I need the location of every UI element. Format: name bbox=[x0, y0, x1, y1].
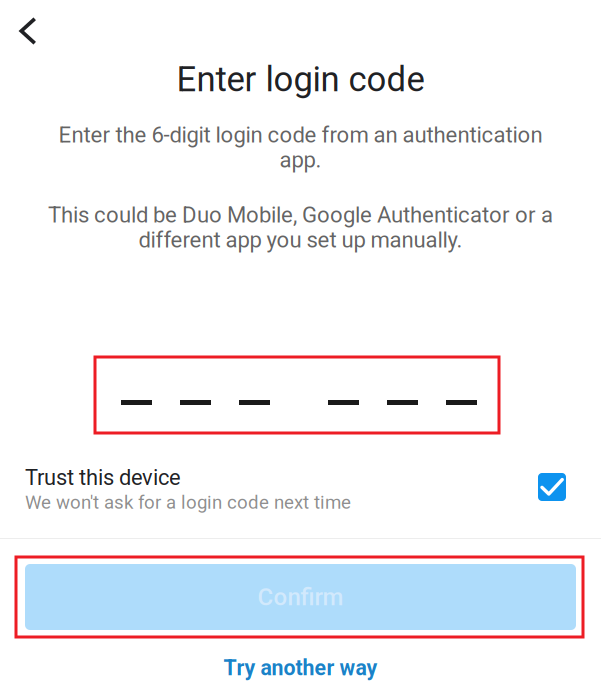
staticText: Enter the 6-digit login code from an aut… bbox=[58, 122, 542, 148]
button[interactable]: Back bbox=[4, 5, 52, 57]
staticText: We won't ask for a login code next time bbox=[25, 491, 351, 513]
button[interactable]: Try another way bbox=[0, 655, 601, 681]
button[interactable]: Trust this device bbox=[25, 464, 566, 514]
staticText: app. bbox=[279, 147, 321, 173]
staticText: Trust this device bbox=[25, 465, 181, 490]
staticText: This could be Duo Mobile, Google Authent… bbox=[48, 202, 553, 228]
staticText: Try another way bbox=[223, 655, 377, 680]
staticText: Enter login code bbox=[176, 59, 424, 100]
staticText: different app you set up manually. bbox=[138, 227, 462, 253]
button[interactable]: Confirm bbox=[16, 557, 583, 637]
staticText: Confirm bbox=[257, 583, 343, 611]
